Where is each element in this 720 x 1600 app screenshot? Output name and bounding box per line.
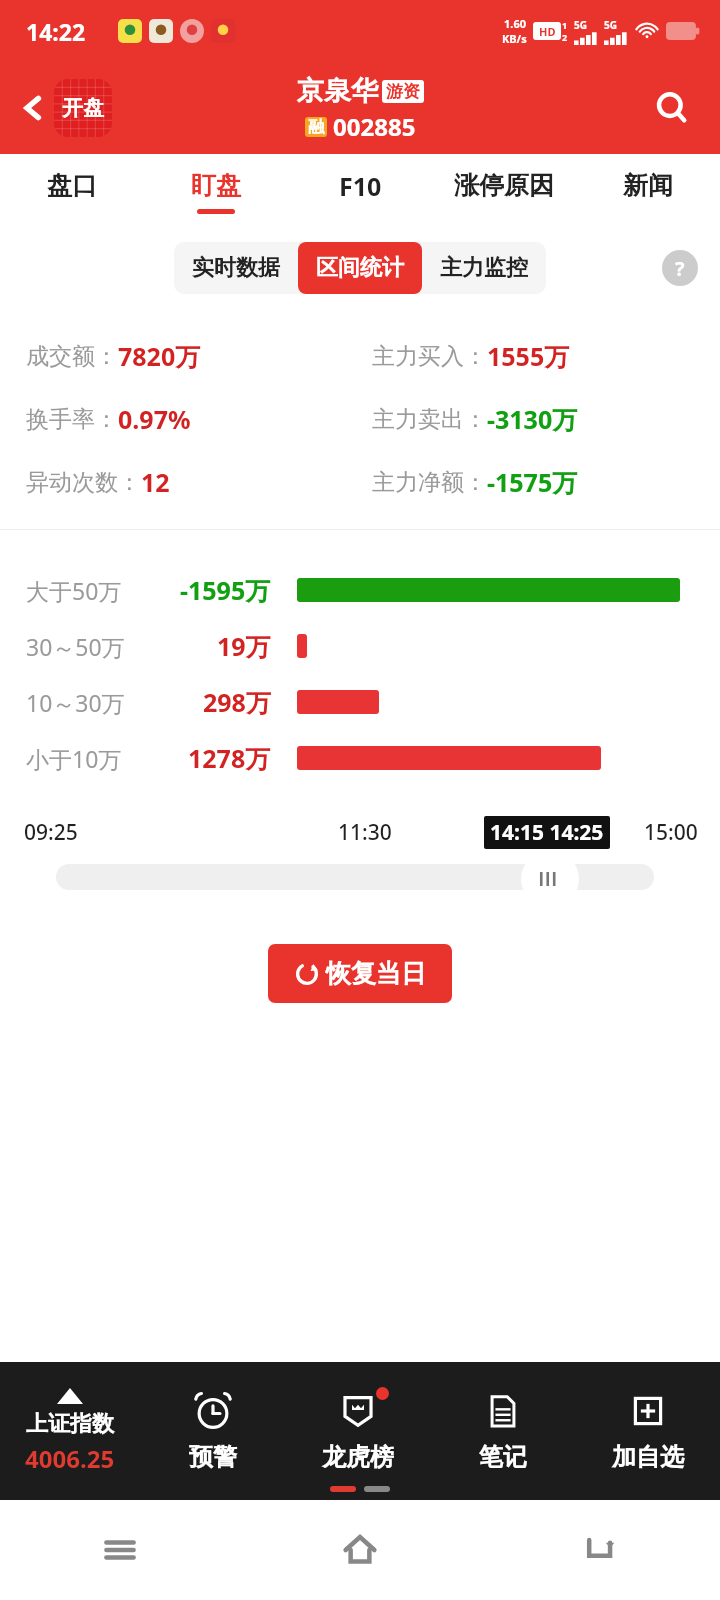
staticText: 09:25 <box>24 818 78 847</box>
button[interactable]: Slider handle <box>521 850 579 908</box>
staticText: 5G <box>574 18 587 32</box>
staticText: 涨停原因 <box>454 170 554 201</box>
staticText: 实时数据 <box>192 254 280 282</box>
staticText: F10 <box>339 169 382 203</box>
button[interactable]: 盯盘 <box>144 154 288 230</box>
staticText: 14:15 14:25 <box>490 818 604 847</box>
staticText: 19万 <box>217 629 271 663</box>
button[interactable]: 区间统计 <box>298 242 422 294</box>
staticText: 恢复当日 <box>326 958 426 989</box>
staticText: -1595万 <box>180 573 271 607</box>
staticText: 换手率： <box>26 405 118 434</box>
button[interactable]: Back to 开盘 <box>10 73 120 143</box>
button[interactable]: 涨停原因 <box>432 154 576 230</box>
button[interactable]: 加自选 <box>575 1362 720 1500</box>
staticText: 上证指数 <box>26 1410 114 1438</box>
staticText: 15:00 <box>644 818 698 847</box>
staticText: 30～50万 <box>26 631 125 662</box>
staticText: 融 <box>308 117 324 137</box>
button[interactable]: 新闻 <box>576 154 720 230</box>
staticText: 异动次数： <box>26 468 141 497</box>
staticText: 笔记 <box>479 1442 527 1472</box>
staticText: 大于50万 <box>26 575 122 606</box>
button[interactable]: Search <box>646 82 698 134</box>
staticText: 1 <box>562 19 568 31</box>
staticText: 游资 <box>386 81 420 102</box>
staticText: 5G <box>604 18 617 32</box>
staticText: 成交额： <box>26 342 118 371</box>
staticText: 京泉华 <box>297 74 378 108</box>
button[interactable]: Time range slider <box>56 864 654 890</box>
staticText: 1555万 <box>487 339 570 373</box>
staticText: 14:22 <box>26 16 86 47</box>
staticText: KB/s <box>502 31 527 46</box>
staticText: 盘口 <box>47 170 97 201</box>
staticText: 主力卖出： <box>372 405 487 434</box>
staticText: 盯盘 <box>191 170 241 201</box>
staticText: 开盘 <box>62 95 104 121</box>
button[interactable]: 盘口 <box>0 154 144 230</box>
button[interactable]: Back <box>480 1500 720 1600</box>
button[interactable]: 龙虎榜 <box>285 1362 430 1500</box>
staticText: HD <box>539 24 556 39</box>
staticText: 区间统计 <box>316 254 404 282</box>
button[interactable]: 上证指数 <box>0 1362 140 1500</box>
staticText: 1278万 <box>188 741 271 775</box>
staticText: 12 <box>141 465 170 499</box>
staticText: 龙虎榜 <box>322 1442 394 1472</box>
button[interactable]: 笔记 <box>430 1362 575 1500</box>
staticText: 新闻 <box>623 170 673 201</box>
staticText: 4006.25 <box>25 1442 115 1475</box>
button[interactable]: 恢复当日 <box>268 944 452 1003</box>
staticText: 主力监控 <box>440 254 528 282</box>
staticText: 298万 <box>203 685 271 719</box>
staticText: 加自选 <box>612 1442 684 1472</box>
staticText: 0.97% <box>118 402 191 436</box>
staticText: 主力买入： <box>372 342 487 371</box>
staticText: 11:30 <box>338 818 392 847</box>
button[interactable]: 主力监控 <box>422 242 546 294</box>
staticText: 预警 <box>189 1442 237 1472</box>
staticText: 7820万 <box>118 339 201 373</box>
button[interactable]: 实时数据 <box>174 242 298 294</box>
staticText: 002885 <box>333 110 416 143</box>
staticText: 主力净额： <box>372 468 487 497</box>
staticText: ? <box>675 255 685 282</box>
button[interactable]: 预警 <box>140 1362 285 1500</box>
button[interactable]: Help <box>662 250 698 286</box>
staticText: 2 <box>562 31 568 43</box>
staticText: -3130万 <box>487 402 578 436</box>
staticText: 10～30万 <box>26 687 125 718</box>
staticText: -1575万 <box>487 465 578 499</box>
button[interactable]: Recent apps <box>0 1500 240 1600</box>
staticText: 1.60 <box>504 16 526 31</box>
button[interactable]: Home <box>240 1500 480 1600</box>
staticText: 小于10万 <box>26 743 122 774</box>
button[interactable]: F10 <box>288 154 432 230</box>
